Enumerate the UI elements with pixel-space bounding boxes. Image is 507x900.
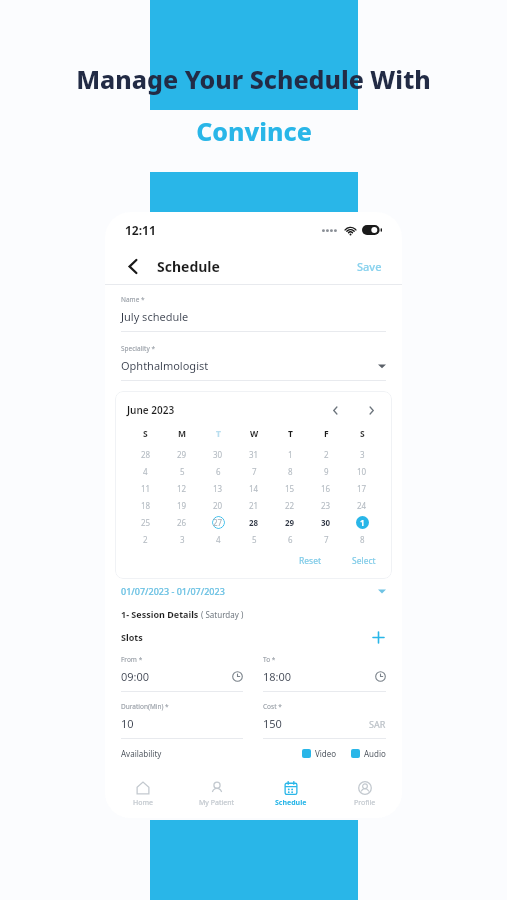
button[interactable]: 12 (164, 480, 200, 497)
staticText: Select (352, 555, 376, 567)
button[interactable]: 4 (127, 463, 164, 480)
button[interactable]: From * (121, 655, 243, 692)
staticText: 16 (321, 483, 331, 494)
staticText: 150 (263, 716, 282, 731)
staticText: 11 (141, 483, 151, 494)
staticText: Reset (299, 555, 322, 567)
button[interactable]: 14 (236, 480, 272, 497)
staticText: 27 (213, 517, 223, 528)
staticText: 28 (141, 449, 151, 460)
staticText: 31 (249, 449, 259, 460)
button[interactable]: 8 (344, 531, 380, 548)
staticText: 25 (141, 517, 151, 528)
button[interactable]: Video (302, 748, 337, 759)
button[interactable]: 11 (127, 480, 164, 497)
staticText: 8 (360, 534, 365, 545)
button[interactable]: 3 (164, 531, 200, 548)
button[interactable]: 19 (164, 497, 200, 514)
button[interactable]: 5 (236, 531, 272, 548)
button[interactable]: 27 (200, 514, 236, 531)
button[interactable]: Cost * (263, 702, 386, 739)
staticText: 4 (216, 534, 221, 545)
button[interactable]: 1 (272, 446, 308, 463)
staticText: Convince (196, 114, 312, 148)
button[interactable]: Back (121, 254, 145, 278)
staticText: 01/07/2023 - 01/07/2023 (121, 585, 225, 597)
button[interactable]: 31 (236, 446, 272, 463)
staticText: T (288, 428, 293, 440)
staticText: Save (357, 259, 382, 274)
staticText: 7 (252, 466, 257, 477)
button[interactable]: Profile (328, 770, 402, 818)
staticText: 6 (288, 534, 293, 545)
button[interactable]: 26 (164, 514, 200, 531)
button[interactable]: 3 (344, 446, 380, 463)
button[interactable]: 5 (164, 463, 200, 480)
button[interactable]: Duration(Min) * (121, 702, 243, 739)
staticText: M (178, 428, 187, 440)
staticText: 10 (121, 716, 134, 731)
staticText: 28 (249, 517, 259, 528)
button[interactable]: Name * (121, 295, 386, 332)
button[interactable]: 30 (308, 514, 344, 531)
button[interactable]: 29 (272, 514, 308, 531)
button[interactable]: 10 (344, 463, 380, 480)
button[interactable]: 2 (308, 446, 344, 463)
button[interactable]: My Patient (180, 770, 254, 818)
button[interactable]: Reset (295, 553, 326, 569)
button[interactable]: 01/07/2023 - 01/07/2023 (121, 585, 386, 597)
button[interactable]: To * (263, 655, 386, 692)
button[interactable]: 21 (236, 497, 272, 514)
button[interactable]: 8 (272, 463, 308, 480)
button[interactable]: 29 (164, 446, 200, 463)
button[interactable]: Schedule (254, 770, 328, 818)
button[interactable]: Next month (362, 401, 380, 419)
staticText: T (216, 428, 221, 440)
staticText: 15 (285, 483, 295, 494)
button[interactable]: 28 (236, 514, 272, 531)
button[interactable]: 22 (272, 497, 308, 514)
button[interactable]: 24 (344, 497, 380, 514)
staticText: 20 (213, 500, 223, 511)
button[interactable]: 2 (127, 531, 164, 548)
button[interactable]: 25 (127, 514, 164, 531)
staticText: Ophthalmologist (121, 358, 209, 373)
button[interactable]: 18 (127, 497, 164, 514)
staticText: 3 (360, 449, 365, 460)
button[interactable]: 6 (272, 531, 308, 548)
button[interactable]: 6 (200, 463, 236, 480)
button[interactable]: 4 (200, 531, 236, 548)
staticText: 30 (321, 517, 331, 528)
button[interactable]: 13 (200, 480, 236, 497)
button[interactable]: 23 (308, 497, 344, 514)
staticText: Speciality * (121, 344, 155, 353)
button[interactable]: Previous month (326, 401, 344, 419)
button[interactable]: 7 (308, 531, 344, 548)
button[interactable]: Speciality * (121, 344, 386, 381)
button[interactable]: Home (105, 770, 180, 818)
staticText: Schedule (275, 798, 307, 808)
staticText: Audio (364, 748, 386, 759)
button[interactable]: Save (353, 255, 386, 278)
button[interactable]: 30 (200, 446, 236, 463)
button[interactable]: 9 (308, 463, 344, 480)
button[interactable]: 15 (272, 480, 308, 497)
button[interactable]: Select (348, 553, 380, 569)
staticText: Name * (121, 295, 145, 304)
button[interactable]: 17 (344, 480, 380, 497)
staticText: 18 (141, 500, 151, 511)
button[interactable]: Add slot (370, 629, 386, 645)
button[interactable]: Audio (351, 748, 386, 759)
button[interactable]: 1 (344, 514, 380, 531)
button[interactable]: 20 (200, 497, 236, 514)
button[interactable]: 16 (308, 480, 344, 497)
staticText: 22 (285, 500, 295, 511)
staticText: 4 (143, 466, 148, 477)
staticText: 29 (285, 517, 295, 528)
staticText: 5 (180, 466, 185, 477)
staticText: Manage Your Schedule With (76, 62, 431, 96)
staticText: From * (121, 655, 143, 664)
staticText: 5 (252, 534, 257, 545)
button[interactable]: 28 (127, 446, 164, 463)
button[interactable]: 7 (236, 463, 272, 480)
